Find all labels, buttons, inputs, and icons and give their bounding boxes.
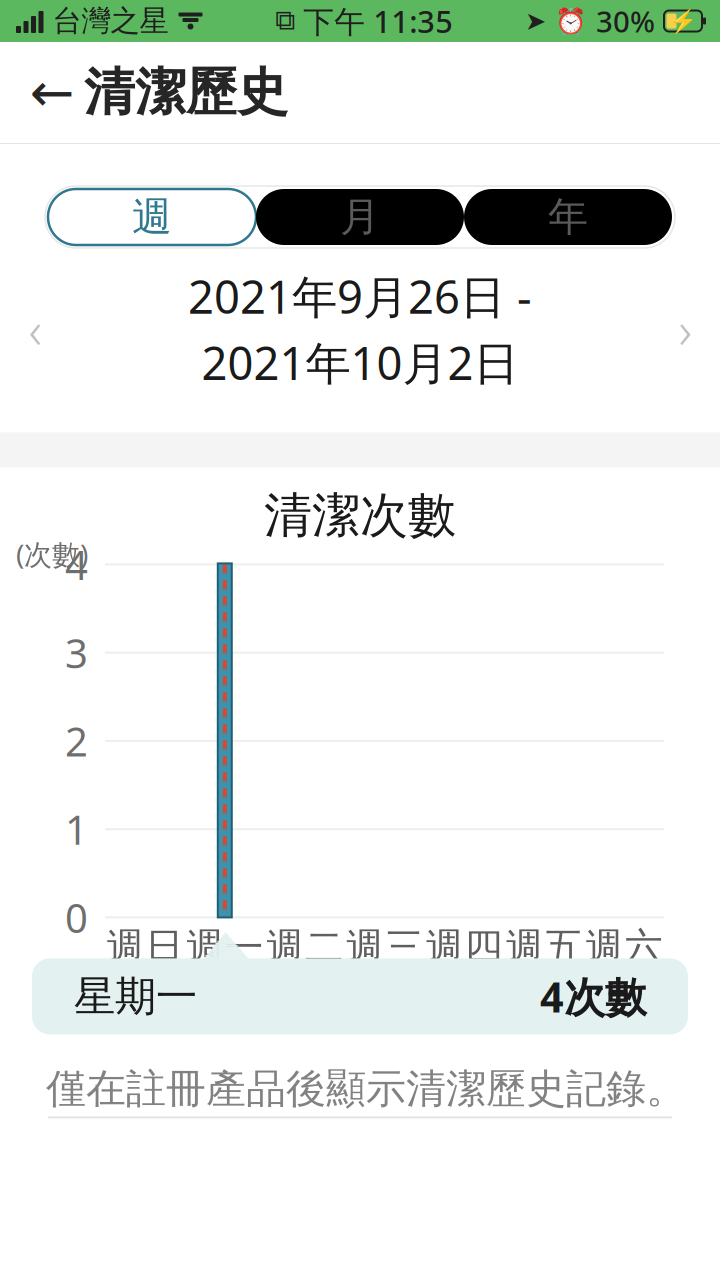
staticText: 月 — [340, 192, 380, 241]
staticText: 3 — [65, 626, 88, 679]
staticText: ← — [29, 62, 74, 123]
staticText: ⚡ — [669, 8, 697, 34]
staticText: 1 — [65, 803, 88, 856]
staticText: ⏰ — [555, 6, 587, 35]
staticText: 週四 — [425, 924, 503, 971]
staticText: ⧉ — [275, 7, 295, 35]
button[interactable]: 下一週 — [650, 289, 720, 369]
button[interactable]: 清潔歷史 — [84, 61, 288, 124]
staticText: 清潔歷史 — [84, 61, 288, 124]
staticText: 週一 — [186, 924, 264, 971]
staticText: ➤ — [525, 7, 546, 35]
staticText: 30% — [596, 1, 655, 40]
staticText: 2 — [65, 714, 88, 767]
staticText: 僅在註冊產品後顯示清潔歷史記錄。 — [46, 1064, 686, 1113]
staticText: 週二 — [266, 924, 344, 971]
staticText: (次數) — [16, 535, 88, 573]
button[interactable]: 週 — [48, 189, 256, 245]
staticText: 0 — [65, 891, 88, 944]
staticText: 2021年9月26日 - — [188, 266, 532, 326]
staticText: 2021年10月2日 — [201, 332, 518, 392]
button[interactable]: 年 — [464, 189, 672, 245]
staticText: 下午 11:35 — [303, 1, 453, 41]
staticText: 星期一 — [74, 971, 197, 1022]
staticText: 清潔次數 — [264, 486, 456, 545]
staticText: 4 — [65, 538, 88, 591]
staticText: › — [678, 296, 691, 363]
staticText: 週三 — [345, 924, 423, 971]
staticText: 週六 — [585, 924, 663, 971]
staticText: 年 — [548, 192, 588, 241]
button[interactable]: 返回 — [20, 60, 84, 124]
button[interactable]: 上一週 — [0, 289, 70, 369]
staticText: ‹ — [28, 296, 41, 363]
staticText: 週 — [132, 192, 172, 241]
button[interactable]: 月 — [256, 189, 464, 245]
staticText: 4次數 — [540, 969, 646, 1024]
staticText: 台灣之星 — [52, 3, 168, 39]
staticText: 週五 — [505, 924, 583, 971]
staticText: 週日 — [106, 924, 184, 971]
